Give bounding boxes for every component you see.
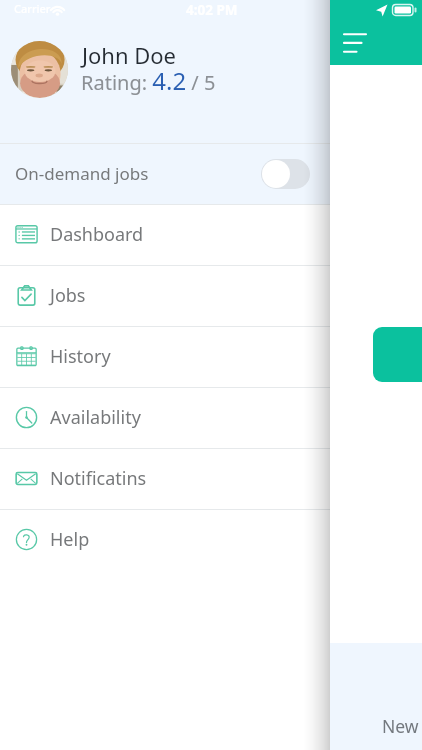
staticText: Dashboard	[50, 222, 144, 247]
staticText: Help	[50, 527, 90, 552]
button[interactable]: Notificatins	[0, 448, 330, 509]
button[interactable]: History	[0, 326, 330, 387]
staticText: John Doe	[82, 40, 177, 70]
staticText: New Message	[382, 714, 422, 738]
button[interactable]: On-demand jobs	[0, 143, 330, 204]
button[interactable]: Jobs	[0, 265, 330, 326]
staticText: 4:02 PM	[186, 1, 238, 19]
staticText: Availability	[50, 405, 141, 430]
staticText: On-demand jobs	[15, 162, 149, 185]
button[interactable]	[261, 159, 310, 189]
staticText: Carrier	[14, 1, 51, 16]
staticText: Notificatins	[50, 466, 147, 491]
button[interactable]: Open navigation menu	[338, 26, 374, 62]
staticText: History	[50, 344, 111, 369]
button[interactable]: Help	[0, 509, 330, 570]
staticText: Jobs	[50, 283, 86, 308]
button[interactable]: Dashboard	[0, 204, 330, 265]
button[interactable]: Availability	[0, 387, 330, 448]
button[interactable]	[373, 327, 422, 382]
staticText: Rating: 4.2 / 5	[81, 64, 216, 97]
